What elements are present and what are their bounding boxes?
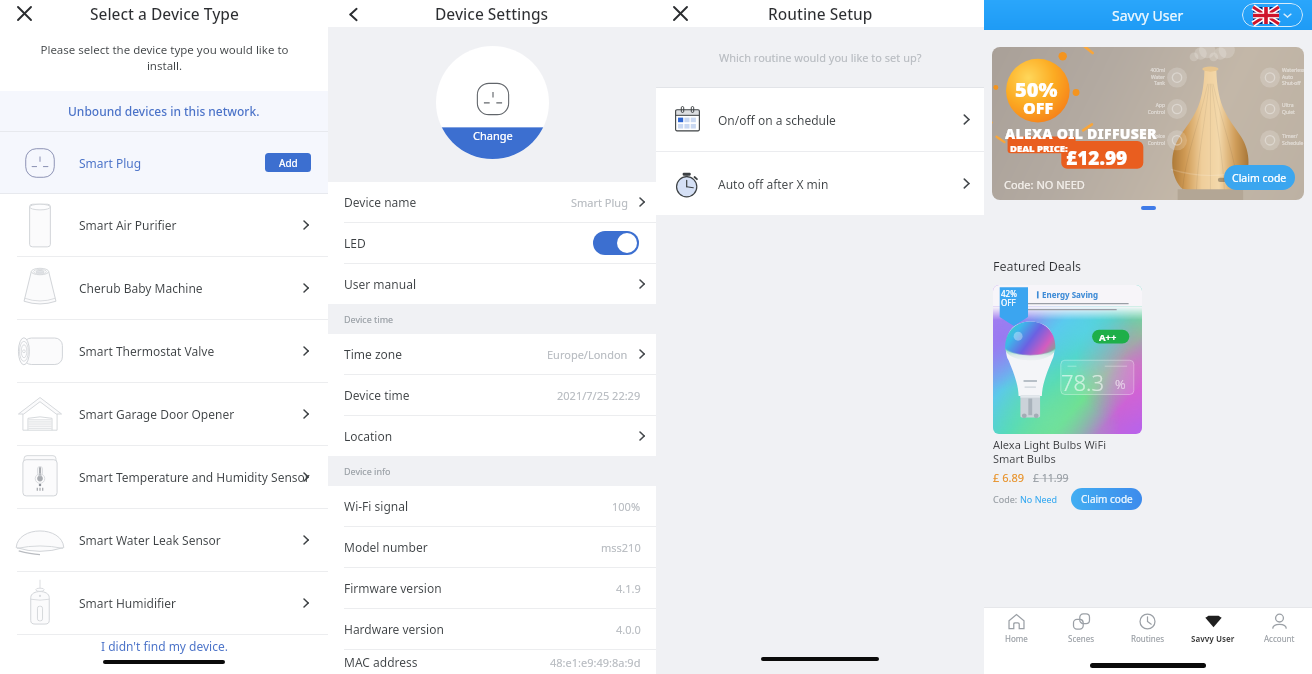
staticText: Energy Saving bbox=[1042, 289, 1099, 300]
staticText: 48:e1:e9:49:8a:9d bbox=[550, 655, 641, 670]
staticText: Device time bbox=[344, 313, 394, 325]
staticText: Device name bbox=[344, 194, 417, 210]
staticText: Smart Plug bbox=[79, 155, 265, 171]
button[interactable]: Device name bbox=[328, 182, 656, 222]
staticText: Europe/London bbox=[547, 347, 628, 362]
staticText: 2021/7/25 22:29 bbox=[557, 388, 641, 403]
button[interactable]: Model number bbox=[328, 527, 656, 567]
staticText: Smart Plug bbox=[571, 195, 628, 210]
button[interactable]: Add bbox=[265, 153, 311, 172]
button[interactable]: Close bbox=[10, 0, 38, 27]
button[interactable]: Device time bbox=[328, 375, 656, 415]
staticText: Featured Deals bbox=[993, 258, 1082, 275]
staticText: Smart Water Leak Sensor bbox=[79, 532, 221, 548]
staticText: Code: NO NEED bbox=[1004, 177, 1085, 192]
staticText: Location bbox=[344, 428, 393, 444]
staticText: OFF bbox=[1023, 97, 1054, 119]
button[interactable]: Location bbox=[328, 416, 656, 456]
button[interactable]: Energy Saving bbox=[993, 285, 1142, 510]
button[interactable]: Close bbox=[666, 0, 694, 27]
button[interactable]: Back bbox=[340, 1, 366, 27]
staticText: Smart Air Purifier bbox=[79, 217, 177, 233]
staticText: mss210 bbox=[601, 540, 641, 555]
staticText: Please select the device type you would … bbox=[40, 42, 289, 73]
button[interactable]: I didn't find my device. bbox=[101, 638, 228, 654]
button[interactable]: On/off on a schedule bbox=[656, 88, 984, 151]
button[interactable]: LED bbox=[328, 223, 656, 263]
staticText: £ 11.99 bbox=[1033, 471, 1069, 485]
staticText: £12.99 bbox=[1066, 145, 1128, 171]
button[interactable]: Cherub Baby Machine bbox=[0, 257, 328, 319]
staticText: Savvy User bbox=[1112, 6, 1184, 25]
button[interactable]: 50% bbox=[992, 47, 1304, 200]
button[interactable]: Auto off after X min bbox=[656, 152, 984, 215]
button[interactable]: Smart Thermostat Valve bbox=[0, 320, 328, 382]
staticText: Account bbox=[1264, 633, 1295, 644]
button[interactable]: Smart Humidifier bbox=[0, 572, 328, 634]
staticText: Savvy User bbox=[1191, 633, 1235, 644]
staticText: 4.1.9 bbox=[616, 581, 641, 596]
staticText: Smart Temperature and Humidity Sensor bbox=[79, 469, 310, 485]
staticText: Timer/ Schedule bbox=[1282, 133, 1304, 146]
button[interactable]: Smart Plug bbox=[0, 132, 328, 193]
staticText: Ultra Quiet bbox=[1282, 102, 1295, 115]
button[interactable]: Change bbox=[436, 46, 549, 159]
staticText: 78.3 bbox=[1061, 367, 1105, 397]
staticText: Scenes bbox=[1068, 633, 1095, 644]
button[interactable]: Firmware version bbox=[328, 568, 656, 608]
button[interactable]: Smart Garage Door Opener bbox=[0, 383, 328, 445]
button[interactable]: Savvy User bbox=[1180, 608, 1246, 649]
staticText: LED bbox=[344, 235, 593, 251]
staticText: Waterless Auto Shut-off bbox=[1282, 67, 1304, 86]
staticText: Firmware version bbox=[344, 580, 442, 596]
button[interactable]: Scenes bbox=[1049, 608, 1114, 649]
staticText: On/off on a schedule bbox=[718, 112, 948, 128]
staticText: Device info bbox=[344, 465, 391, 477]
staticText: Add bbox=[279, 156, 298, 170]
staticText: 400ml Water Tank bbox=[1118, 67, 1165, 86]
staticText: % bbox=[1115, 375, 1126, 393]
staticText: Hardware version bbox=[344, 621, 444, 637]
button[interactable]: Smart Water Leak Sensor bbox=[0, 509, 328, 571]
staticText: Voice Control bbox=[1118, 133, 1165, 146]
button[interactable]: Claim code bbox=[1071, 488, 1142, 510]
button[interactable]: User manual bbox=[328, 264, 656, 304]
button[interactable]: Select language bbox=[1242, 3, 1303, 27]
button[interactable]: Unbound devices in this network. bbox=[0, 91, 328, 131]
button[interactable]: Smart Air Purifier bbox=[0, 194, 328, 256]
staticText: Alexa Light Bulbs WiFi Smart Bulbs bbox=[993, 437, 1106, 466]
staticText: £ 6.89 bbox=[993, 470, 1024, 485]
button[interactable]: Hardware version bbox=[328, 609, 656, 649]
staticText: 100% bbox=[612, 499, 641, 514]
staticText: User manual bbox=[344, 276, 416, 292]
staticText: Claim code bbox=[1232, 171, 1287, 185]
staticText: Code: bbox=[993, 493, 1020, 505]
staticText: ALEXA OIL DIFFUSER bbox=[1005, 124, 1157, 143]
staticText: Routine Setup bbox=[768, 3, 873, 24]
staticText: No Need bbox=[1020, 493, 1058, 505]
staticText: A++ bbox=[1099, 331, 1117, 344]
staticText: Claim code bbox=[1081, 492, 1133, 506]
staticText: Device Settings bbox=[435, 3, 549, 24]
staticText: MAC address bbox=[344, 654, 418, 670]
staticText: Home bbox=[1005, 633, 1028, 644]
staticText: Smart Humidifier bbox=[79, 595, 176, 611]
button[interactable]: Wi-Fi signal bbox=[328, 486, 656, 526]
button[interactable]: Routines bbox=[1114, 608, 1180, 649]
staticText: Cherub Baby Machine bbox=[79, 280, 203, 296]
staticText: Auto off after X min bbox=[718, 176, 948, 192]
staticText: Model number bbox=[344, 539, 428, 555]
staticText: Smart Thermostat Valve bbox=[79, 343, 215, 359]
staticText: Which routine would you like to set up? bbox=[719, 50, 922, 65]
button[interactable]: Claim code bbox=[1224, 165, 1295, 190]
button[interactable]: Account bbox=[1246, 608, 1312, 649]
staticText: Select a Device Type bbox=[90, 3, 239, 24]
button[interactable]: Time zone bbox=[328, 334, 656, 374]
staticText: Change bbox=[473, 128, 513, 143]
staticText: 50% bbox=[1015, 76, 1058, 103]
staticText: DEAL PRICE: bbox=[1010, 142, 1068, 155]
button[interactable]: Smart Temperature and Humidity Sensor bbox=[0, 446, 328, 508]
button[interactable]: MAC address bbox=[328, 650, 656, 674]
button[interactable]: Home bbox=[984, 608, 1049, 649]
staticText: Wi-Fi signal bbox=[344, 498, 409, 514]
